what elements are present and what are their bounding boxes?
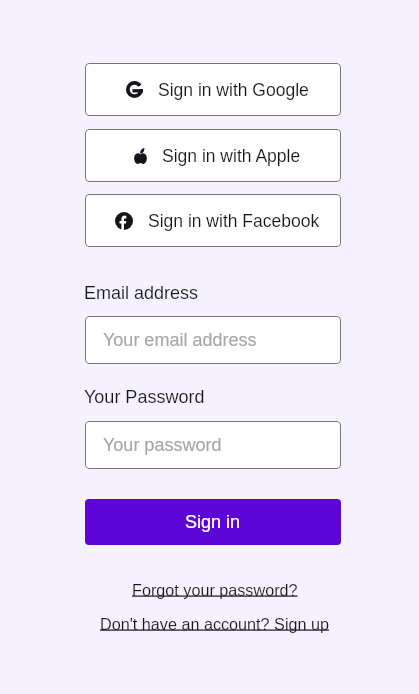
staticText: Email address <box>84 283 199 303</box>
staticText: Your Password <box>84 387 205 407</box>
staticText: Sign in <box>185 512 241 532</box>
staticText: Don't have an account? Sign up <box>100 615 329 633</box>
staticText: Sign in with Apple <box>162 146 301 166</box>
other: Google <box>126 81 143 98</box>
staticText: Forgot your password? <box>132 581 298 599</box>
staticText: Your email address <box>103 330 257 350</box>
staticText: Sign in with Google <box>158 80 309 100</box>
staticText: Sign in with Facebook <box>148 211 320 231</box>
staticText: Your password <box>103 435 222 455</box>
button[interactable]: Your email address <box>85 316 341 364</box>
other: Facebook <box>115 212 133 230</box>
button[interactable]: Facebook <box>85 194 341 247</box>
button[interactable]: Don't have an account? Sign up <box>100 615 329 633</box>
button[interactable]: Sign in <box>85 499 341 545</box>
button[interactable]: Apple <box>85 129 341 182</box>
other: Apple <box>134 148 147 164</box>
button[interactable]: Your password <box>85 421 341 469</box>
button[interactable]: Google <box>85 63 341 116</box>
button[interactable]: Forgot your password? <box>132 581 298 599</box>
